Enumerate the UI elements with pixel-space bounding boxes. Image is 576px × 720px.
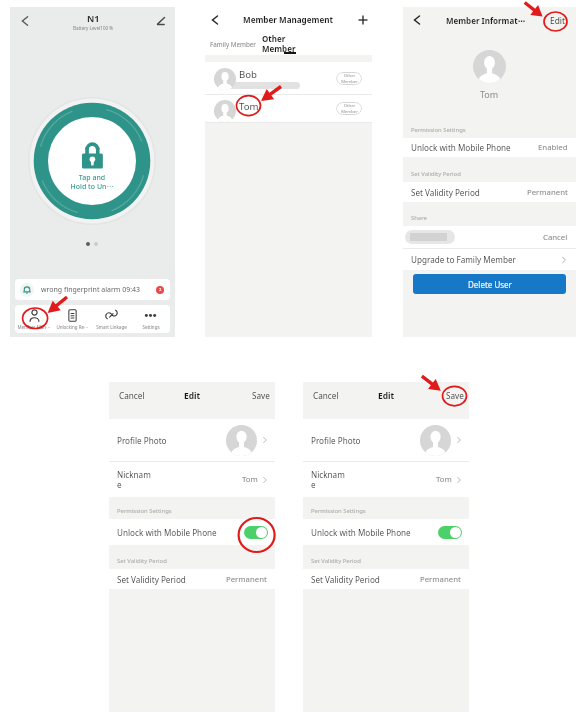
button[interactable]: Unlock with Mobile Phone toggle (244, 526, 268, 539)
staticText: Settings (142, 324, 160, 330)
staticText: Nicknam e (311, 469, 345, 491)
button[interactable]: Edit (153, 13, 169, 29)
staticText: Cancel (313, 390, 339, 401)
button[interactable]: wrong fingerprint alarm 09:43 (15, 279, 170, 300)
button[interactable]: Cancel (313, 390, 339, 401)
button[interactable]: Smart Linkage (92, 305, 131, 333)
staticText: Cancel (119, 390, 145, 401)
staticText: Tom (242, 474, 258, 485)
button[interactable]: Nicknam e (303, 462, 469, 497)
staticText: Save (252, 390, 270, 401)
staticText: Set Validity Period (311, 557, 361, 565)
staticText: Set Validity Period (411, 187, 480, 198)
button[interactable]: Edit (550, 15, 566, 26)
staticText: Member Management (243, 14, 334, 25)
button[interactable]: Other Member (336, 72, 362, 85)
staticText: Permission Settings (117, 507, 172, 515)
button[interactable]: Member Man⋯ (15, 305, 53, 333)
button[interactable]: Set Validity Period (303, 569, 469, 589)
staticText: Member Man⋯ (17, 324, 51, 330)
staticText: Edit (184, 390, 201, 401)
button[interactable]: Profile Photo (303, 419, 469, 461)
staticText: Tap and Hold to Un⋯ (28, 173, 156, 191)
staticText: Tom (436, 474, 452, 485)
staticText: Share (411, 214, 427, 222)
button[interactable]: Other Member (336, 102, 362, 115)
button[interactable]: Back (16, 12, 34, 30)
staticText: Profile Photo (117, 435, 167, 446)
staticText: Permission Settings (311, 507, 366, 515)
button[interactable]: Profile Photo (109, 419, 275, 461)
button[interactable]: Cancel (119, 390, 145, 401)
staticText: Upgrade to Family Member (411, 254, 516, 265)
button[interactable]: Set Validity Period (109, 569, 275, 589)
staticText: Other Member (262, 33, 296, 54)
button[interactable]: Unlocking Re⋯ (53, 305, 92, 333)
staticText: Permission Settings (411, 126, 466, 134)
button[interactable]: Add member (355, 12, 371, 28)
button[interactable]: Unlock with Mobile Phone (109, 519, 275, 545)
staticText: Edit (550, 15, 566, 26)
staticText: Unlock with Mobile Phone (311, 527, 411, 538)
staticText: Cancel (543, 232, 568, 243)
staticText: Enabled (538, 142, 568, 153)
staticText: Profile Photo (311, 435, 361, 446)
button[interactable]: Settings (131, 305, 170, 333)
button[interactable]: Back (409, 12, 425, 28)
button[interactable]: Unlock with Mobile Phone (403, 138, 576, 157)
staticText: Edit (378, 390, 395, 401)
button[interactable]: Tom (205, 95, 372, 122)
staticText: Unlock with Mobile Phone (117, 527, 217, 538)
button[interactable]: Family Member (210, 40, 256, 49)
staticText: Tom (480, 88, 499, 100)
staticText: Set Validity Period (117, 557, 167, 565)
button[interactable]: Back (207, 12, 223, 28)
staticText: Tom (239, 100, 259, 113)
staticText: Unlocking Re⋯ (56, 324, 89, 330)
staticText: Other Member (341, 73, 358, 84)
button[interactable]: Set Validity Period (403, 182, 576, 202)
staticText: Delete User (468, 279, 512, 290)
staticText: Member Informat⋯ (446, 15, 526, 26)
button[interactable]: Save (252, 390, 270, 401)
button[interactable]: Edit (378, 390, 395, 401)
button[interactable]: Unlock with Mobile Phone toggle (438, 526, 462, 539)
button[interactable]: Bob (205, 62, 372, 94)
button[interactable]: Unlock with Mobile Phone (303, 519, 469, 545)
staticText: N1 (87, 12, 100, 24)
button[interactable]: Edit (184, 390, 201, 401)
staticText: Set Validity Period (411, 170, 461, 178)
button[interactable]: Cancel (403, 226, 576, 248)
staticText: Set Validity Period (117, 574, 186, 585)
staticText: Set Validity Period (311, 574, 380, 585)
staticText: 2 (159, 287, 162, 293)
staticText: Bob (239, 68, 257, 81)
staticText: Battery Level100 % (73, 25, 113, 31)
button[interactable]: Save (446, 390, 464, 401)
staticText: Permanent (527, 187, 568, 198)
staticText: Permanent (420, 574, 461, 585)
staticText: Save (446, 390, 464, 401)
button[interactable]: Other Member (262, 33, 296, 54)
staticText: Permanent (226, 574, 267, 585)
button[interactable]: Upgrade to Family Member (403, 249, 576, 270)
staticText: Nicknam e (117, 469, 151, 491)
button[interactable]: Delete User (413, 274, 566, 294)
staticText: Smart Linkage (96, 324, 127, 330)
staticText: Other Member (341, 103, 358, 114)
staticText: wrong fingerprint alarm 09:43 (41, 285, 141, 295)
button[interactable]: Nicknam e (109, 462, 275, 497)
staticText: Unlock with Mobile Phone (411, 142, 511, 153)
